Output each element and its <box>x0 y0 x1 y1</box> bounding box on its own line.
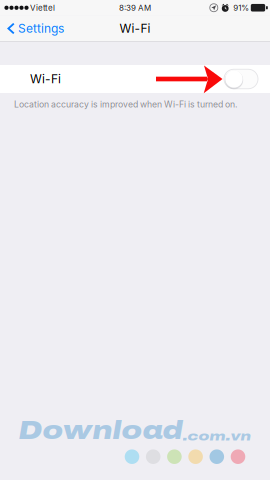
staticText: 91% <box>233 3 249 13</box>
staticText: 8:39 AM <box>119 3 151 13</box>
staticText: Settings <box>18 21 64 36</box>
staticText: Wi-Fi <box>119 21 150 36</box>
staticText: Viettel <box>30 3 55 13</box>
staticText: Wi-Fi <box>30 72 61 86</box>
button[interactable]: Settings <box>0 15 70 41</box>
staticText: Location accuracy is improved when Wi-Fi… <box>14 99 237 109</box>
staticText: .com.vn <box>182 429 251 443</box>
staticText: Download <box>18 417 182 444</box>
button[interactable]: Wi-Fi <box>0 65 270 93</box>
